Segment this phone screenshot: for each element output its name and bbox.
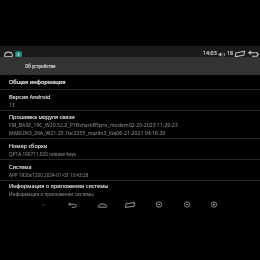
button[interactable]: Screenshot	[175, 197, 199, 212]
staticText: Версия Android	[9, 93, 51, 100]
button[interactable]: Back	[60, 197, 84, 212]
button[interactable]: Версия Android	[0, 90, 260, 110]
button[interactable]: Volume up	[202, 197, 226, 212]
staticText: Информация о приложении системы	[9, 182, 109, 189]
staticText: Информация о приложении системы	[9, 191, 94, 197]
staticText: MARLIN3_20A_W21.25.1bc2355_marlin3_lite0…	[9, 129, 166, 136]
button[interactable]: Collapse	[31, 197, 55, 212]
staticText: APP 1920x1200 2024-01-03 13:43:28	[9, 172, 89, 178]
staticText: 18	[227, 49, 234, 56]
button[interactable]: Volume down	[147, 197, 171, 212]
button[interactable]: Номер сборки	[0, 139, 260, 159]
button[interactable]: Recents	[118, 197, 142, 212]
staticText: Общая информация	[9, 78, 66, 86]
button[interactable]: Home	[90, 197, 114, 212]
staticText: Об устройстве	[25, 63, 56, 69]
staticText: QP1A.190711.020 release-keys	[9, 151, 77, 157]
button[interactable]: Прошивка модуля связи	[0, 111, 260, 138]
button[interactable]: Об устройстве	[0, 57, 260, 75]
staticText: FM_BASE_19C_W20.52.2_P1BsharkB5pro_modem…	[9, 121, 178, 128]
staticText: Номер сборки	[9, 142, 48, 149]
staticText: Система	[9, 163, 32, 170]
staticText: 13	[9, 102, 15, 108]
button[interactable]: Информация о приложении системы	[0, 181, 260, 197]
staticText: Прошивка модуля связи	[9, 113, 75, 120]
button[interactable]: Система	[0, 160, 260, 180]
staticText: 14:03	[203, 49, 217, 56]
